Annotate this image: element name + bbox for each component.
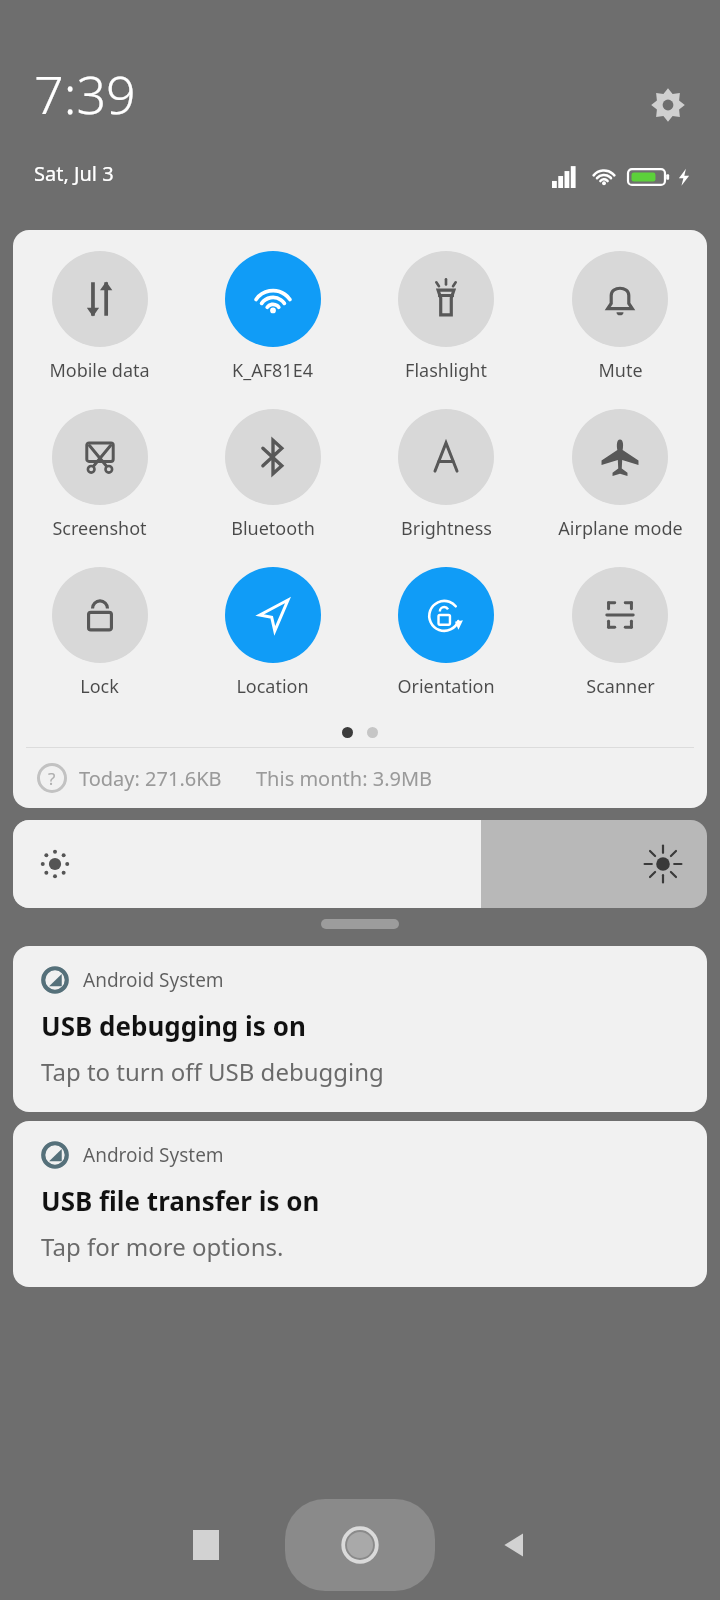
staticText: Airplane mode xyxy=(558,516,683,541)
staticText: Today: 271.6KB xyxy=(79,765,222,792)
button[interactable]: Orientation xyxy=(359,565,533,701)
staticText: USB debugging is on xyxy=(41,1008,306,1043)
button[interactable]: Mute xyxy=(533,249,707,385)
button[interactable]: Back xyxy=(486,1517,542,1573)
staticText: Flashlight xyxy=(405,358,487,383)
staticText: Bluetooth xyxy=(231,516,315,541)
staticText: 7:39 xyxy=(34,58,136,129)
staticText: Sat, Jul 3 xyxy=(34,160,114,187)
button[interactable]: K_AF81E4 xyxy=(186,249,359,385)
staticText: Tap to turn off USB debugging xyxy=(41,1055,384,1088)
button[interactable]: Bluetooth xyxy=(186,407,359,543)
button[interactable]: Airplane mode xyxy=(533,407,707,543)
button[interactable]: Screenshot xyxy=(13,407,186,543)
staticText: Location xyxy=(236,674,309,699)
button[interactable]: Flashlight xyxy=(359,249,533,385)
staticText: Orientation xyxy=(397,674,495,699)
staticText: Mobile data xyxy=(49,358,150,383)
staticText: Screenshot xyxy=(52,516,147,541)
staticText: USB file transfer is on xyxy=(41,1183,320,1218)
button[interactable]: Android System xyxy=(13,1121,707,1287)
button[interactable]: Mobile data xyxy=(13,249,186,385)
staticText: ? xyxy=(48,767,56,790)
button[interactable]: Location xyxy=(186,565,359,701)
staticText: Lock xyxy=(80,674,119,699)
staticText: This month: 3.9MB xyxy=(256,765,433,792)
button[interactable]: Recent apps xyxy=(178,1517,234,1573)
button[interactable]: Android System xyxy=(13,946,707,1112)
button[interactable]: Home xyxy=(285,1499,435,1591)
staticText: Scanner xyxy=(586,674,655,699)
button[interactable]: Brightness xyxy=(359,407,533,543)
staticText: K_AF81E4 xyxy=(232,358,313,383)
button[interactable]: ? xyxy=(13,748,707,808)
button[interactable]: Brightness xyxy=(13,820,707,908)
button[interactable]: Scanner xyxy=(533,565,707,701)
staticText: Tap for more options. xyxy=(41,1230,284,1263)
staticText: Brightness xyxy=(401,516,492,541)
staticText: Android System xyxy=(83,967,224,993)
button[interactable]: Lock xyxy=(13,565,186,701)
staticText: Android System xyxy=(83,1142,224,1168)
button[interactable]: Expand xyxy=(321,919,399,929)
button[interactable]: Settings xyxy=(648,85,688,125)
staticText: Mute xyxy=(598,358,643,383)
